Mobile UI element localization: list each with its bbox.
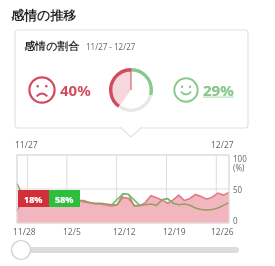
button[interactable]: Positive emotion xyxy=(159,77,248,103)
staticText: 58% xyxy=(55,193,74,205)
button[interactable]: Negative emotion xyxy=(15,76,103,104)
staticText: 40% xyxy=(60,80,91,100)
button[interactable]: Date range slider xyxy=(10,241,245,259)
button[interactable]: 18% xyxy=(18,190,49,207)
staticText: 50 xyxy=(233,184,243,195)
staticText: 18% xyxy=(24,193,43,205)
staticText: 11/28 xyxy=(13,226,36,238)
staticText: 12/19 xyxy=(163,226,186,238)
other: Positive emotion xyxy=(173,77,199,103)
staticText: 感情の推移 xyxy=(11,7,77,23)
staticText: 12/27 xyxy=(211,139,234,151)
button[interactable]: 58% xyxy=(49,190,80,207)
staticText: 12/5 xyxy=(63,226,81,238)
staticText: (%) xyxy=(233,162,245,173)
staticText: 11/27 - 12/27 xyxy=(86,41,136,52)
button[interactable] xyxy=(17,155,229,223)
staticText: 11/27 xyxy=(15,139,38,151)
staticText: 100 xyxy=(233,153,247,164)
button[interactable]: 感情の割合 xyxy=(15,30,248,128)
staticText: 感情の割合 xyxy=(24,39,80,53)
staticText: 12/26 xyxy=(211,226,234,238)
staticText: 29% xyxy=(203,80,234,100)
staticText: 0 xyxy=(233,215,238,226)
staticText: 12/12 xyxy=(113,226,136,238)
other: Negative emotion xyxy=(28,76,56,104)
